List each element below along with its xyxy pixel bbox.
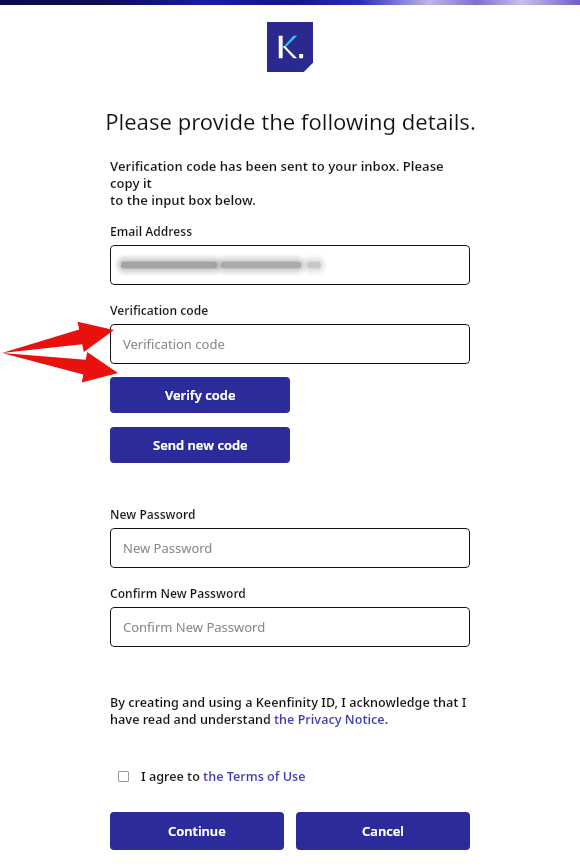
staticText: Email Address [110, 223, 193, 239]
button[interactable]: Continue [110, 812, 284, 850]
button[interactable]: Send new code [110, 427, 290, 463]
button[interactable]: Verification code [110, 324, 470, 364]
staticText: Verification code [110, 302, 209, 318]
button[interactable]: Verify code [110, 377, 290, 413]
button[interactable]: Email address, hidden [110, 245, 470, 285]
staticText: Verification code [123, 335, 225, 353]
button[interactable]: Confirm New Password [110, 607, 470, 647]
staticText: New Password [123, 539, 213, 557]
button[interactable]: I agree to the Terms of Use [116, 765, 308, 788]
button[interactable]: New Password [110, 528, 470, 568]
staticText: By creating and using a Keenfinity ID, I… [110, 694, 467, 727]
staticText: Please provide the following details. [105, 106, 476, 136]
staticText: New Password [110, 506, 196, 522]
staticText: Confirm New Password [110, 585, 246, 601]
staticText: I agree to the Terms of Use [141, 768, 306, 785]
staticText: Cancel [362, 822, 405, 840]
button[interactable]: Cancel [296, 812, 470, 850]
staticText: Continue [168, 822, 226, 840]
staticText: Verify code [165, 386, 236, 404]
staticText: Send new code [153, 436, 248, 454]
staticText: Confirm New Password [123, 618, 266, 636]
staticText: Verification code has been sent to your … [110, 157, 470, 209]
